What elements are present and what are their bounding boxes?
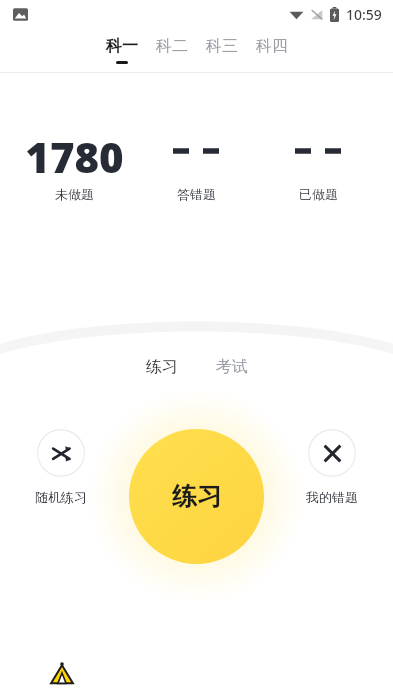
button[interactable]: 科三 (206, 36, 238, 64)
button[interactable]: 练车场 (44, 656, 80, 692)
staticText: 科二 (156, 36, 188, 56)
staticText: 10:59 (346, 5, 382, 24)
button[interactable]: 1780 (14, 128, 135, 202)
staticText: 考试 (216, 357, 248, 377)
button[interactable]: 科一 (106, 36, 138, 64)
staticText: 练习 (146, 357, 178, 377)
staticText: 随机练习 (35, 489, 87, 505)
button[interactable]: 练习 (146, 357, 178, 377)
staticText: 练习 (172, 481, 222, 512)
staticText: 未做题 (55, 186, 94, 202)
staticText: 科四 (256, 36, 288, 56)
button[interactable]: 科四 (256, 36, 288, 64)
staticText: 已做题 (299, 186, 338, 202)
button[interactable]: 我的错题 (306, 429, 358, 505)
staticText: 1780 (25, 128, 124, 174)
staticText: 答错题 (177, 186, 216, 202)
staticText: 科三 (206, 36, 238, 56)
button[interactable]: 答错题 (135, 128, 257, 202)
button[interactable]: 随机练习 (35, 429, 87, 505)
button[interactable]: 练习 (129, 429, 264, 564)
staticText: 科一 (106, 36, 138, 56)
button[interactable]: 科二 (156, 36, 188, 64)
button[interactable]: 考试 (216, 357, 248, 377)
button[interactable]: 已做题 (257, 128, 379, 202)
staticText: 我的错题 (306, 489, 358, 505)
